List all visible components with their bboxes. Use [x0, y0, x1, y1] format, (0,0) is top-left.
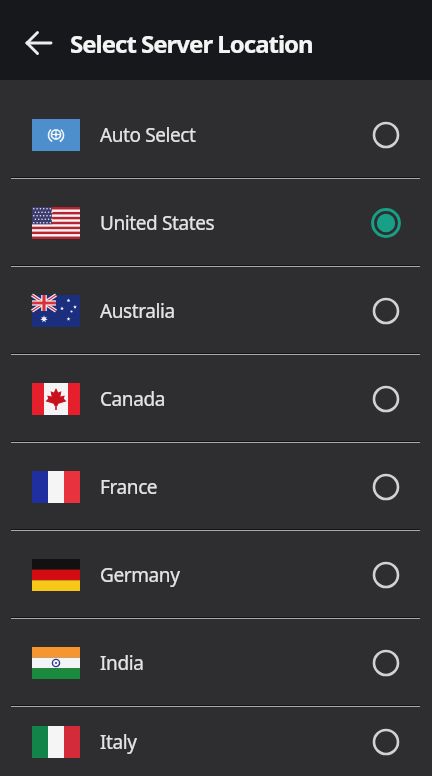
button[interactable]: Germany [0, 531, 432, 619]
staticText: Germany [100, 562, 180, 588]
staticText: Canada [100, 386, 166, 412]
button[interactable]: Italy [0, 707, 432, 776]
button[interactable]: India [0, 619, 432, 707]
staticText: Italy [100, 729, 137, 755]
staticText: India [100, 650, 144, 676]
staticText: United States [100, 210, 215, 236]
staticText: Australia [100, 298, 175, 324]
staticText: Auto Select [100, 122, 196, 148]
button[interactable] [24, 29, 54, 57]
button[interactable]: France [0, 443, 432, 531]
button[interactable]: Canada [0, 355, 432, 443]
button[interactable]: Australia [0, 267, 432, 355]
staticText: Select Server Location [70, 27, 313, 60]
button[interactable]: Auto Select [0, 91, 432, 179]
button[interactable]: United States [0, 179, 432, 267]
staticText: France [100, 474, 158, 500]
